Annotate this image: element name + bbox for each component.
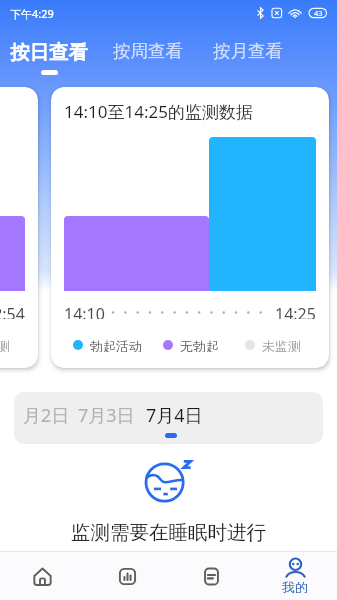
button[interactable]: 7月3日	[78, 392, 135, 438]
staticText: 22:54	[0, 303, 25, 319]
staticText: 下午4:29	[10, 6, 54, 21]
button[interactable]: Statistics	[85, 552, 169, 600]
staticText: 监测需要在睡眠时进行	[71, 520, 266, 545]
button[interactable]: 月2日	[23, 392, 70, 438]
staticText: 未监测	[262, 338, 301, 352]
staticText: 月2日	[23, 403, 70, 428]
staticText: 按月查看	[213, 40, 283, 62]
staticText: 14:25	[275, 303, 316, 319]
staticText: 14:10至14:25的监测数据	[64, 100, 253, 123]
staticText: 未监测	[0, 338, 10, 352]
staticText: 7月3日	[78, 403, 135, 428]
staticText: 按周查看	[113, 40, 183, 62]
button[interactable]: 7月4日	[146, 392, 203, 438]
button[interactable]: 14:10至14:25的监测数据	[51, 87, 329, 368]
staticText: 43	[314, 8, 323, 18]
staticText: 我的	[282, 579, 308, 595]
button[interactable]: Home	[0, 552, 85, 600]
button[interactable]: 我的	[253, 552, 337, 600]
staticText: 按日查看	[10, 40, 88, 65]
button[interactable]: 按日查看	[8, 40, 90, 75]
button[interactable]: Reports	[169, 552, 253, 600]
staticText: 勃起活动	[90, 338, 142, 352]
button[interactable]: 22:39至22:54的监测数据	[0, 87, 38, 368]
button[interactable]: 按月查看	[211, 40, 285, 72]
staticText: 14:10	[64, 303, 105, 319]
button[interactable]: 按周查看	[111, 40, 185, 72]
staticText: 7月4日	[146, 403, 203, 428]
staticText: 无勃起	[180, 338, 219, 352]
